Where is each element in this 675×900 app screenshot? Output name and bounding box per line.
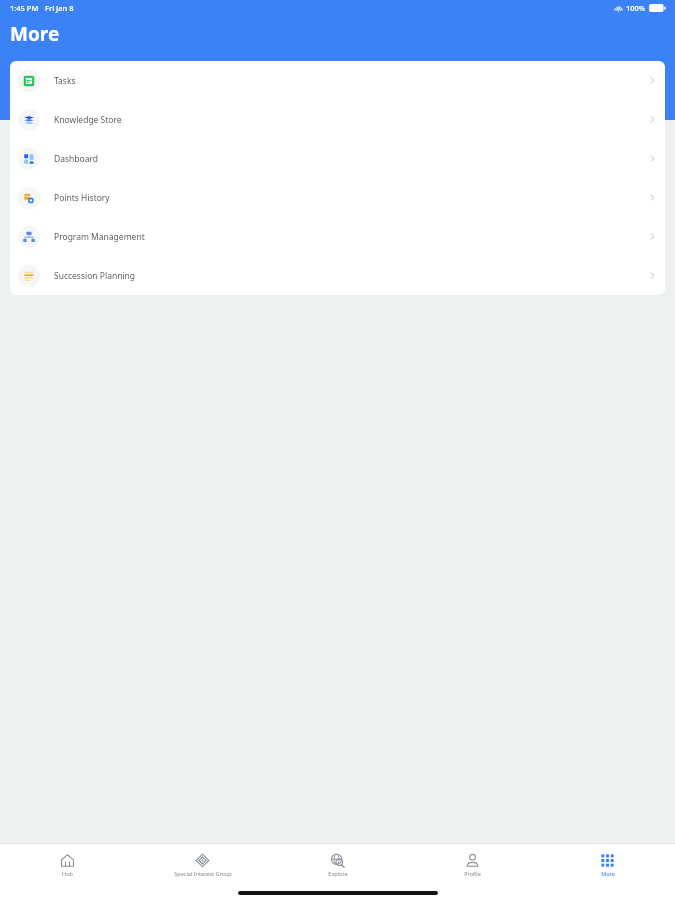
staticText: More bbox=[601, 870, 615, 877]
button[interactable]: Explore bbox=[270, 853, 405, 877]
staticText: Program Management bbox=[54, 231, 145, 243]
button[interactable]: Knowledge Store bbox=[10, 100, 665, 139]
button[interactable]: Points History bbox=[10, 178, 665, 217]
staticText: More bbox=[10, 21, 60, 47]
staticText: Profile bbox=[464, 870, 481, 877]
staticText: Points History bbox=[54, 192, 110, 204]
button[interactable]: More bbox=[540, 853, 675, 877]
staticText: Tasks bbox=[54, 75, 76, 87]
staticText: Explore bbox=[328, 870, 348, 877]
button[interactable]: Program Management bbox=[10, 217, 665, 256]
staticText: 1:45 PM bbox=[10, 3, 39, 13]
button[interactable]: Profile bbox=[405, 853, 540, 877]
button[interactable]: Special Interest Group bbox=[135, 853, 270, 877]
staticText: Hub bbox=[62, 870, 73, 877]
button[interactable]: Succession Planning bbox=[10, 256, 665, 295]
staticText: 100% bbox=[626, 3, 646, 13]
staticText: Knowledge Store bbox=[54, 114, 122, 126]
button[interactable]: Hub bbox=[0, 853, 135, 877]
staticText: Fri Jan 8 bbox=[45, 3, 74, 13]
button[interactable]: Dashboard bbox=[10, 139, 665, 178]
staticText: Dashboard bbox=[54, 153, 99, 165]
staticText: Succession Planning bbox=[54, 270, 136, 282]
button[interactable]: Tasks bbox=[10, 61, 665, 100]
staticText: Special Interest Group bbox=[174, 870, 232, 877]
